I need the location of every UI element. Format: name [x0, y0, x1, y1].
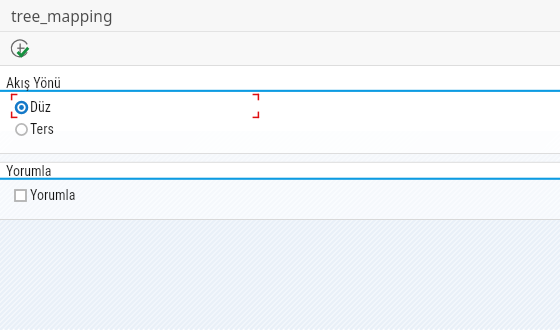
- staticText: Yorumla: [6, 163, 52, 179]
- button[interactable]: Save: [11, 39, 30, 58]
- staticText: Yorumla: [30, 187, 76, 203]
- button[interactable]: Yorumla: [6, 163, 52, 179]
- staticText: tree_mapping: [11, 5, 113, 26]
- button[interactable]: Akış Yönü: [6, 75, 61, 91]
- button[interactable]: Yorumla: [0, 184, 560, 206]
- staticText: Düz: [30, 99, 51, 115]
- staticText: Ters: [30, 121, 54, 137]
- button[interactable]: Düz: [0, 96, 560, 118]
- staticText: Akış Yönü: [6, 75, 61, 91]
- button[interactable]: Ters: [0, 118, 560, 140]
